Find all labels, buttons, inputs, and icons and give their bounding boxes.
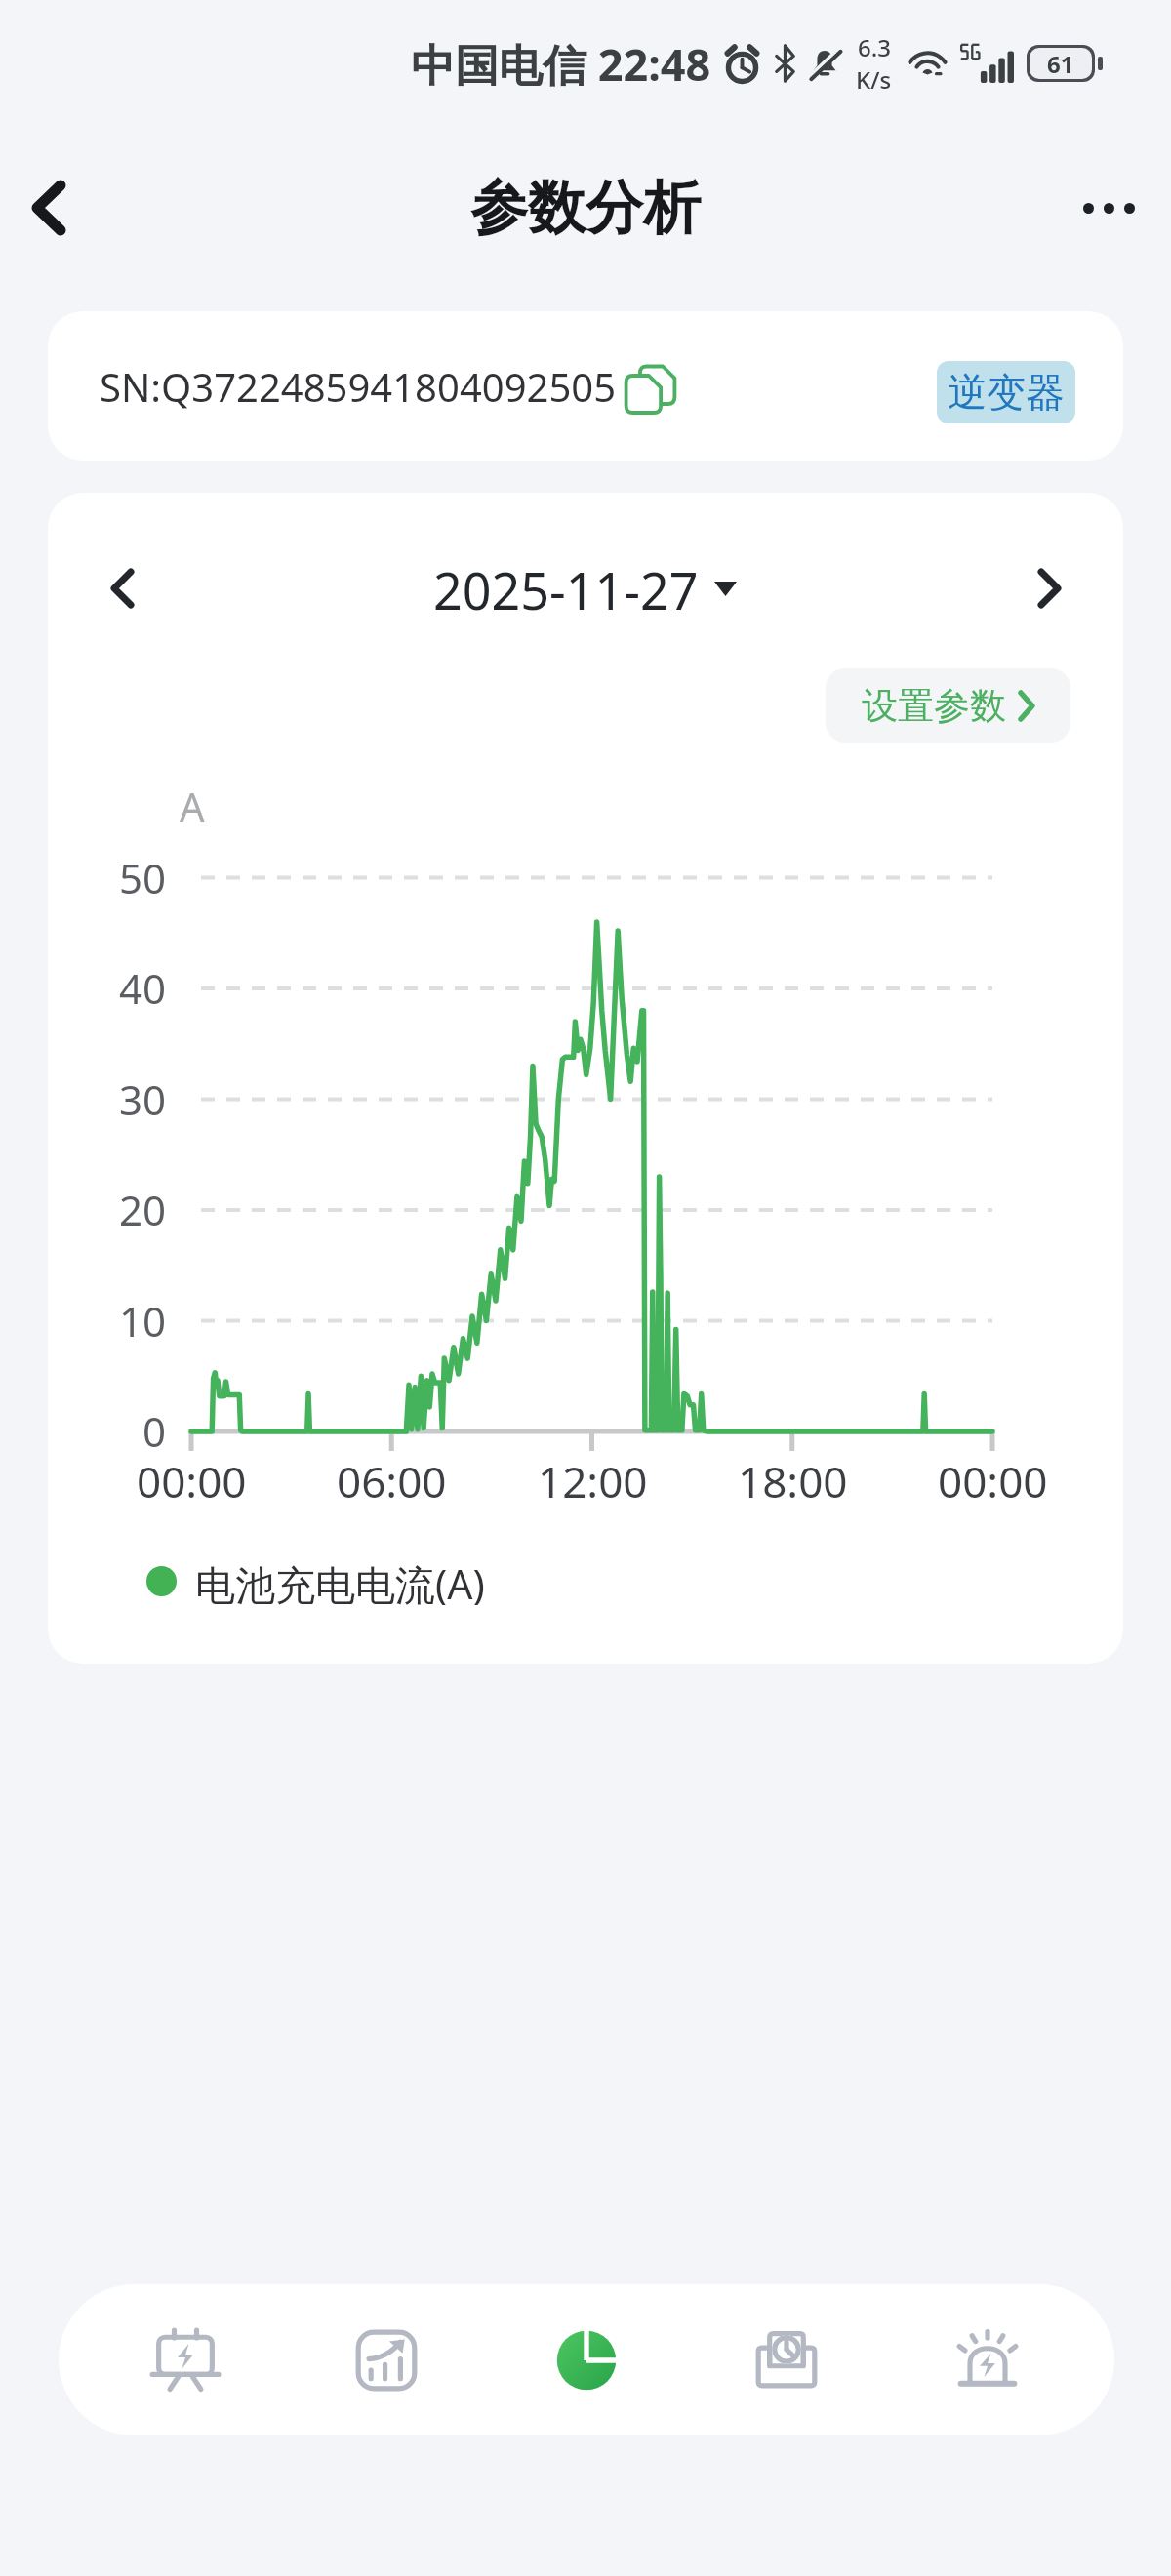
staticText: 参数分析 xyxy=(470,172,701,244)
staticText: 6.3 xyxy=(858,31,891,63)
staticText: 中国电信 22:48 xyxy=(411,34,711,94)
button[interactable]: Statistics xyxy=(313,2284,460,2435)
button[interactable]: 设置参数 xyxy=(826,668,1070,743)
button[interactable]: Previous day xyxy=(83,549,161,627)
button[interactable]: Next day xyxy=(1010,549,1088,627)
staticText: A xyxy=(180,780,205,832)
button[interactable]: Alarm xyxy=(914,2284,1061,2435)
staticText: 30 xyxy=(119,1071,167,1127)
staticText: 12:00 xyxy=(538,1452,648,1510)
staticText: 61 xyxy=(1047,48,1074,79)
button[interactable]: Analysis xyxy=(513,2284,660,2435)
staticText: 设置参数 xyxy=(862,683,1006,729)
button[interactable]: 逆变器 xyxy=(937,361,1075,423)
staticText: 40 xyxy=(119,960,167,1016)
button[interactable]: Back xyxy=(0,159,98,257)
button[interactable]: Device xyxy=(112,2284,259,2435)
staticText: 20 xyxy=(119,1182,167,1237)
button[interactable]: More options xyxy=(1055,154,1162,262)
staticText: 电池充电电流(A) xyxy=(195,1556,485,1605)
button[interactable]: SN:Q3722485941804092505 xyxy=(48,311,1123,461)
staticText: 06:00 xyxy=(337,1452,447,1510)
staticText: 18:00 xyxy=(738,1452,848,1510)
button[interactable]: Copy serial number xyxy=(625,365,676,414)
staticText: SN:Q3722485941804092505 xyxy=(100,360,617,413)
staticText: 0 xyxy=(142,1403,167,1459)
staticText: 2025-11-27 xyxy=(433,555,699,622)
staticText: 00:00 xyxy=(938,1452,1048,1510)
staticText: 逆变器 xyxy=(948,368,1065,417)
staticText: 10 xyxy=(119,1293,167,1348)
button[interactable]: History xyxy=(713,2284,860,2435)
staticText: 00:00 xyxy=(137,1452,247,1510)
staticText: 50 xyxy=(119,850,167,906)
button[interactable]: 2025-11-27 xyxy=(424,549,747,627)
staticText: K/s xyxy=(856,63,892,96)
